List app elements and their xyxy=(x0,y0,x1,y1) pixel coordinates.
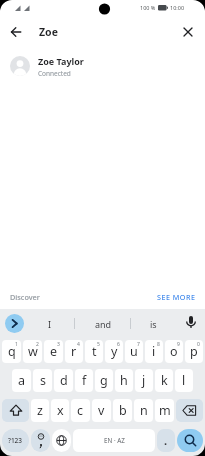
staticText: s xyxy=(40,372,46,389)
staticText: c xyxy=(77,402,84,419)
button[interactable] xyxy=(2,399,29,422)
button[interactable]: b xyxy=(113,399,132,422)
staticText: I xyxy=(48,318,52,330)
staticText: m xyxy=(159,402,171,419)
button[interactable]: i xyxy=(145,340,163,363)
staticText: g xyxy=(100,372,108,389)
staticText: e xyxy=(50,343,58,360)
staticText: q xyxy=(8,343,16,360)
staticText: 3 xyxy=(57,341,60,348)
button[interactable]: z xyxy=(31,399,49,422)
staticText: 9 xyxy=(177,341,180,348)
staticText: h xyxy=(120,372,128,389)
button[interactable]: a xyxy=(12,369,31,392)
button[interactable]: . xyxy=(157,429,175,452)
button[interactable]: SEE MORE xyxy=(157,292,196,302)
button[interactable]: c xyxy=(71,399,90,422)
button[interactable]: I xyxy=(30,309,70,338)
staticText: p xyxy=(190,343,198,360)
button[interactable]: m xyxy=(155,399,174,422)
staticText: b xyxy=(119,402,127,419)
button[interactable] xyxy=(5,314,24,333)
staticText: r xyxy=(71,343,77,360)
staticText: j xyxy=(142,372,146,389)
button[interactable]: s xyxy=(33,369,52,392)
button[interactable]: q xyxy=(2,340,21,363)
button[interactable]: l xyxy=(175,369,193,392)
button[interactable]: p xyxy=(185,340,203,363)
button[interactable]: o xyxy=(165,340,183,363)
button[interactable]: h xyxy=(115,369,133,392)
button[interactable]: y xyxy=(105,340,123,363)
staticText: y xyxy=(111,343,118,360)
staticText: 6 xyxy=(117,341,120,348)
button[interactable]: r xyxy=(65,340,83,363)
staticText: ?123 xyxy=(8,436,23,445)
staticText: k xyxy=(161,372,168,389)
button[interactable] xyxy=(31,429,50,452)
staticText: w xyxy=(28,343,38,360)
staticText: 2 xyxy=(36,341,39,348)
staticText: x xyxy=(57,402,64,419)
staticText: 100 % xyxy=(140,4,156,11)
staticText: a xyxy=(18,372,26,389)
button[interactable] xyxy=(184,315,198,333)
staticText: d xyxy=(60,372,68,389)
button[interactable] xyxy=(177,429,203,452)
button[interactable]: e xyxy=(44,340,63,363)
staticText: i xyxy=(152,343,156,360)
staticText: EN · AZ xyxy=(104,436,125,445)
button[interactable] xyxy=(176,399,203,422)
staticText: l xyxy=(182,372,186,389)
staticText: f xyxy=(82,372,87,389)
staticText: 8 xyxy=(157,341,160,348)
staticText: 1 xyxy=(15,341,18,348)
button[interactable]: x xyxy=(51,399,69,422)
button[interactable]: g xyxy=(95,369,113,392)
staticText: Zoe Taylor xyxy=(38,55,84,67)
staticText: Discover xyxy=(10,292,40,302)
button[interactable]: w xyxy=(23,340,42,363)
button[interactable]: j xyxy=(135,369,153,392)
staticText: 5 xyxy=(97,341,100,348)
staticText: 0 xyxy=(197,341,200,348)
staticText: Zoe xyxy=(39,25,58,39)
staticText: t xyxy=(92,343,97,360)
button[interactable]: n xyxy=(134,399,153,422)
button[interactable]: t xyxy=(85,340,103,363)
staticText: o xyxy=(170,343,178,360)
button[interactable]: v xyxy=(92,399,111,422)
staticText: 7 xyxy=(137,341,140,348)
button[interactable] xyxy=(52,429,71,452)
button[interactable]: u xyxy=(125,340,143,363)
button[interactable]: ?123 xyxy=(2,429,29,452)
staticText: and xyxy=(95,318,112,330)
button[interactable]: d xyxy=(54,369,73,392)
button[interactable]: EN · AZ xyxy=(73,429,155,452)
staticText: n xyxy=(140,402,148,419)
button[interactable]: Zoe Taylor xyxy=(0,48,205,84)
staticText: u xyxy=(130,343,138,360)
button[interactable]: and xyxy=(78,309,128,338)
staticText: SEE MORE xyxy=(157,292,196,302)
staticText: . xyxy=(164,433,168,448)
button[interactable] xyxy=(182,26,193,37)
button[interactable]: is xyxy=(133,309,173,338)
button[interactable]: f xyxy=(75,369,93,392)
staticText: Connected xyxy=(38,69,71,78)
staticText: v xyxy=(98,402,105,419)
staticText: is xyxy=(150,318,157,330)
staticText: z xyxy=(37,402,43,419)
button[interactable] xyxy=(10,26,22,38)
staticText: 4 xyxy=(77,341,80,348)
staticText: 10:00 xyxy=(170,4,185,11)
button[interactable]: k xyxy=(155,369,173,392)
